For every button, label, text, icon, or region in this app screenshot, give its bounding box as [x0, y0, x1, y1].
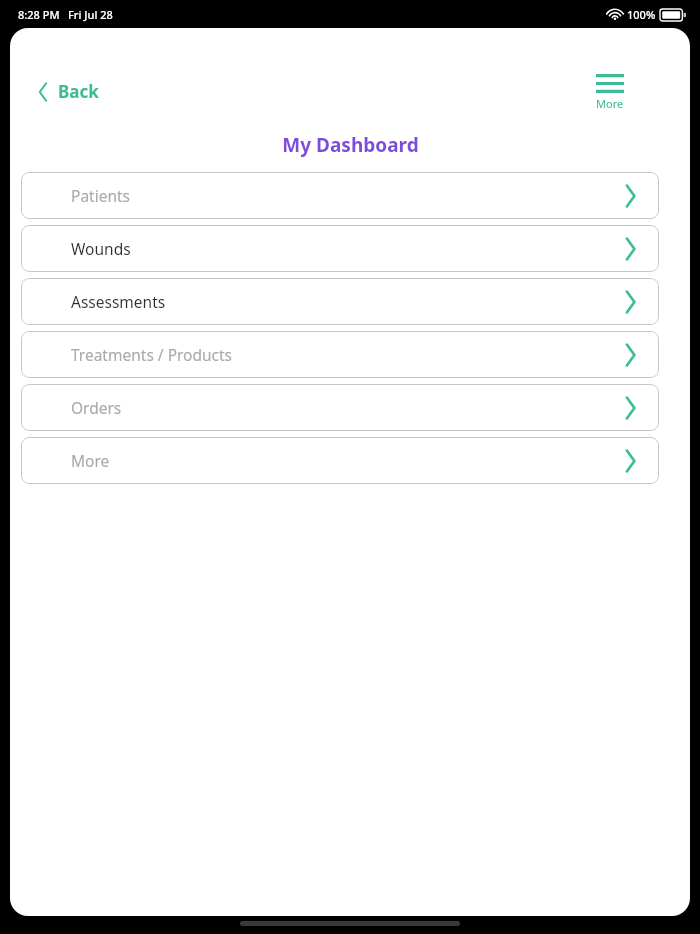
button[interactable]: Treatments / Products [21, 331, 659, 378]
staticText: Back [58, 80, 99, 103]
staticText: My Dashboard [282, 132, 419, 158]
staticText: Fri Jul 28 [68, 7, 113, 22]
staticText: 8:28 PM [18, 7, 60, 22]
button[interactable]: More [21, 437, 659, 484]
staticText: More [71, 450, 110, 471]
staticText: More [596, 96, 624, 111]
button[interactable]: More [584, 66, 636, 119]
button[interactable]: Wounds [21, 225, 659, 272]
staticText: Treatments / Products [71, 344, 233, 365]
staticText: Patients [71, 185, 131, 206]
button[interactable]: Patients [21, 172, 659, 219]
button[interactable]: Assessments [21, 278, 659, 325]
button[interactable]: Back [34, 74, 103, 109]
staticText: Orders [71, 397, 122, 418]
staticText: Wounds [71, 238, 131, 259]
button[interactable]: Orders [21, 384, 659, 431]
staticText: Assessments [71, 291, 166, 312]
staticText: 100% [627, 7, 656, 22]
